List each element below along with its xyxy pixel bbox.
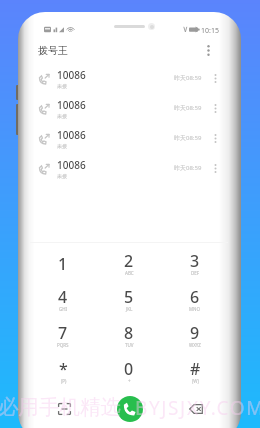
- staticText: TUV: [125, 342, 134, 348]
- staticText: BYJSJXY.COM: [135, 395, 260, 421]
- staticText: JKL: [126, 306, 133, 312]
- staticText: 昨天08:59: [174, 104, 202, 112]
- staticText: 必用手机精选: [0, 394, 121, 420]
- staticText: 10086: [57, 68, 86, 82]
- staticText: 未接: [57, 83, 67, 89]
- staticText: MNO: [189, 306, 201, 312]
- button[interactable]: 10086: [30, 123, 228, 153]
- staticText: 4: [58, 286, 68, 308]
- button[interactable]: Call options: [202, 96, 228, 120]
- button[interactable]: 9: [162, 319, 228, 355]
- staticText: 10086: [57, 158, 86, 172]
- button[interactable]: 8: [96, 319, 162, 355]
- button[interactable]: 2: [96, 247, 162, 283]
- staticText: (P): [61, 378, 67, 384]
- staticText: 10086: [57, 98, 86, 112]
- staticText: 9: [190, 322, 200, 344]
- button[interactable]: 10086: [30, 153, 228, 183]
- staticText: +: [128, 378, 131, 384]
- button[interactable]: Call options: [202, 156, 228, 180]
- button[interactable]: Call options: [202, 66, 228, 90]
- button[interactable]: 5: [96, 283, 162, 319]
- staticText: 未接: [57, 143, 67, 149]
- button[interactable]: 3: [162, 247, 228, 283]
- staticText: 3: [190, 250, 200, 272]
- staticText: (W): [192, 378, 199, 384]
- staticText: 必用手机精选: [0, 394, 121, 420]
- button[interactable]: 4: [30, 283, 96, 319]
- staticText: 昨天08:59: [174, 134, 202, 142]
- staticText: BYJSJXY.COM: [135, 395, 260, 421]
- staticText: *: [59, 358, 68, 380]
- staticText: DEF: [191, 270, 200, 276]
- staticText: 1: [58, 253, 68, 275]
- button[interactable]: Call options: [202, 126, 228, 150]
- staticText: 2: [124, 250, 134, 272]
- button[interactable]: 10086: [30, 63, 228, 93]
- staticText: 7: [58, 322, 68, 344]
- staticText: WXYZ: [189, 342, 201, 348]
- staticText: 昨天08:59: [174, 164, 202, 172]
- button[interactable]: More options: [200, 40, 217, 60]
- button[interactable]: 0: [96, 355, 162, 391]
- staticText: 未接: [57, 173, 67, 179]
- staticText: 10:15: [201, 26, 219, 36]
- staticText: 5: [124, 286, 134, 308]
- staticText: 拨号王: [38, 44, 68, 57]
- staticText: 10086: [57, 128, 86, 142]
- staticText: PQRS: [57, 342, 69, 348]
- staticText: 6: [190, 286, 200, 308]
- button[interactable]: Call: [117, 396, 143, 422]
- button[interactable]: Backspace: [184, 397, 208, 421]
- staticText: 0: [124, 358, 134, 380]
- staticText: ABC: [125, 270, 134, 276]
- staticText: 未接: [57, 113, 67, 119]
- button[interactable]: 1: [30, 247, 96, 283]
- staticText: 昨天08:59: [174, 74, 202, 82]
- button[interactable]: 7: [30, 319, 96, 355]
- staticText: 8: [124, 322, 134, 344]
- button[interactable]: 6: [162, 283, 228, 319]
- button[interactable]: *: [30, 355, 96, 391]
- staticText: GHI: [59, 306, 68, 312]
- staticText: #: [190, 358, 201, 380]
- button[interactable]: 10086: [30, 93, 228, 123]
- button[interactable]: Scan: [52, 397, 76, 421]
- button[interactable]: #: [162, 355, 228, 391]
